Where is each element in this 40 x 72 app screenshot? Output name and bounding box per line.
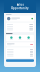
button[interactable]: [6, 59, 34, 62]
staticText: Sales: [16, 3, 23, 6]
staticText: Opportunity: [11, 7, 29, 10]
button[interactable]: [6, 16, 34, 22]
